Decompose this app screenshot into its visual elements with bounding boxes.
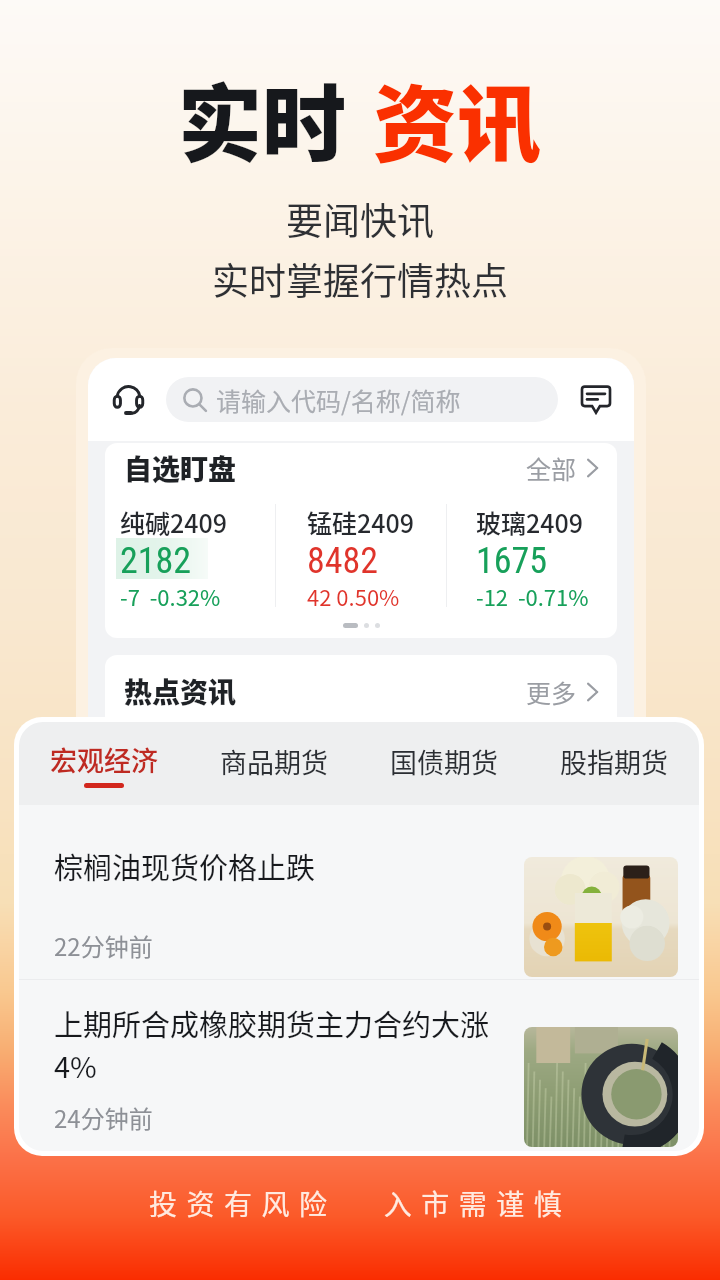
staticText: -7 -0.32% <box>120 580 221 612</box>
staticText: 股指期货 <box>560 742 668 781</box>
button[interactable]: 全部 <box>526 450 602 486</box>
button[interactable]: Customer service <box>104 376 152 424</box>
staticText: 投资有风险 入市需谨慎 <box>149 1183 572 1224</box>
staticText: -12 -0.71% <box>476 580 589 612</box>
staticText: 上期所合成橡胶期货主力合约大涨4% <box>54 1002 524 1086</box>
staticText: 资讯 <box>373 58 542 180</box>
staticText: 更多 <box>526 674 577 710</box>
button[interactable]: 更多 <box>526 674 602 710</box>
staticText: 商品期货 <box>220 742 328 781</box>
button[interactable]: 宏观经济 <box>19 740 189 788</box>
staticText: 宏观经济 <box>50 740 158 779</box>
staticText: 1675 <box>476 540 548 582</box>
staticText: 要闻快讯 <box>286 192 434 246</box>
staticText: 玻璃2409 <box>476 504 584 540</box>
staticText: 2182 <box>120 540 192 582</box>
staticText: 自选盯盘 <box>124 448 237 489</box>
staticText: 8482 <box>307 540 379 582</box>
button[interactable]: 棕榈油现货价格止跌 <box>19 805 699 979</box>
staticText: 国债期货 <box>390 742 498 781</box>
staticText: 24分钟前 <box>54 1100 153 1135</box>
staticText: 请输入代码/名称/简称 <box>216 382 461 418</box>
staticText: 全部 <box>526 450 577 486</box>
staticText: 棕榈油现货价格止跌 <box>54 845 316 887</box>
button[interactable]: 股指期货 <box>529 742 699 785</box>
staticText: 42 0.50% <box>307 580 400 612</box>
staticText: 热点资讯 <box>124 671 237 712</box>
staticText: 22分钟前 <box>54 928 153 963</box>
staticText: 锰硅2409 <box>307 504 415 540</box>
staticText: 纯碱2409 <box>120 504 228 540</box>
staticText: 实时掌握行情热点 <box>212 252 508 306</box>
button[interactable]: 国债期货 <box>359 742 529 785</box>
staticText: 实时 <box>178 58 347 180</box>
button[interactable]: 商品期货 <box>189 742 359 785</box>
button[interactable]: Messages <box>572 376 620 424</box>
button[interactable]: 请输入代码/名称/简称 <box>166 377 558 422</box>
button[interactable]: 上期所合成橡胶期货主力合约大涨4% <box>19 980 699 1151</box>
